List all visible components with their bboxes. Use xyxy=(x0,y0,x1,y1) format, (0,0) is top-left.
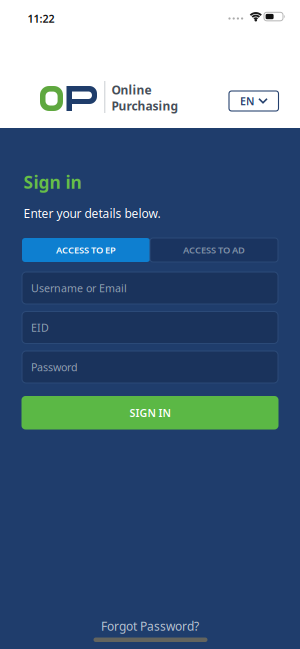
button[interactable]: Forgot Password? xyxy=(101,618,199,634)
staticText: Forgot Password? xyxy=(101,618,199,634)
button[interactable]: EN xyxy=(229,91,278,111)
staticText: Purchasing xyxy=(111,98,178,114)
staticText: Sign in xyxy=(23,170,81,193)
staticText: Enter your details below. xyxy=(23,205,160,221)
staticText: ACCESS TO AD xyxy=(183,244,245,256)
button[interactable]: SIGN IN xyxy=(21,396,278,429)
staticText: SIGN IN xyxy=(129,406,170,420)
staticText: Online xyxy=(111,82,151,98)
staticText: ACCESS TO EP xyxy=(56,244,116,256)
staticText: Username or Email xyxy=(31,281,127,295)
staticText: EN xyxy=(240,94,254,108)
staticText: 11:22 xyxy=(27,11,54,26)
button[interactable]: EID xyxy=(22,311,278,343)
button[interactable]: Username or Email xyxy=(22,272,278,304)
staticText: Password xyxy=(31,360,78,374)
button[interactable]: ACCESS TO EP xyxy=(22,238,150,262)
button[interactable]: ACCESS TO AD xyxy=(150,238,278,262)
button[interactable]: Password xyxy=(22,351,278,383)
staticText: EID xyxy=(31,320,49,335)
